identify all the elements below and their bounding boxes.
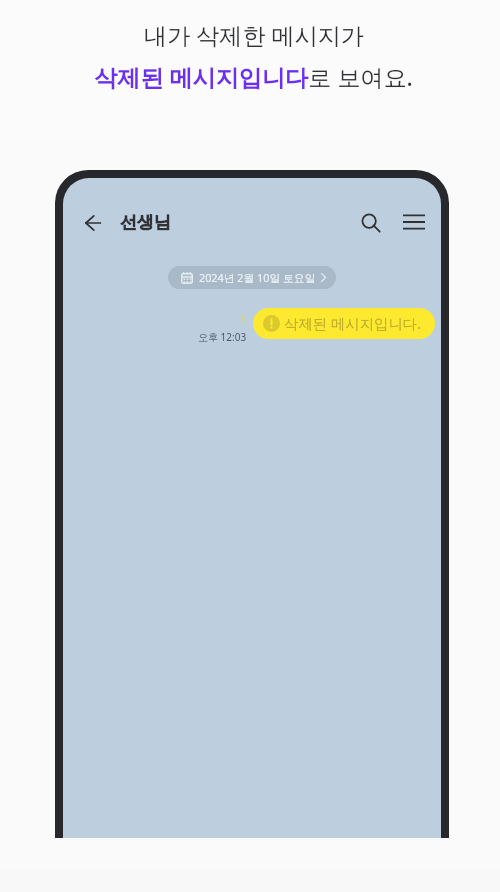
staticText: 내가 삭제한 메시지가: [144, 19, 364, 51]
button[interactable]: 2024년 2월 10일 토요일: [168, 266, 336, 289]
staticText: 2024년 2월 10일 토요일: [199, 270, 316, 285]
staticText: 선생님: [120, 212, 171, 233]
staticText: 삭제된 메시지입니다.: [284, 314, 422, 334]
staticText: 삭제된 메시지입니다로 보여요.: [94, 61, 413, 93]
staticText: 1: [240, 312, 247, 327]
button[interactable]: Back: [76, 206, 108, 238]
button[interactable]: Menu: [398, 206, 430, 238]
staticText: 오후 12:03: [198, 330, 247, 344]
button[interactable]: 삭제된 메시지입니다.: [253, 308, 435, 339]
button[interactable]: Search: [355, 206, 387, 238]
